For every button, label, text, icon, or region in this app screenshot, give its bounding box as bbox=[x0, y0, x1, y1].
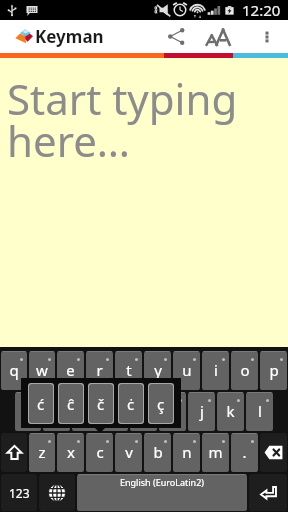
button[interactable]: More options bbox=[250, 20, 283, 53]
button[interactable]: d bbox=[72, 392, 99, 431]
button[interactable]: w bbox=[29, 351, 55, 390]
button[interactable]: h bbox=[159, 392, 186, 431]
button[interactable]: z bbox=[29, 433, 55, 472]
staticText: w bbox=[36, 360, 48, 380]
button[interactable]: 123 bbox=[1, 474, 37, 511]
staticText: d bbox=[81, 401, 91, 421]
staticText: g bbox=[139, 401, 149, 421]
staticText: n bbox=[182, 442, 192, 462]
staticText: x bbox=[67, 442, 75, 462]
button[interactable]: m bbox=[202, 433, 229, 472]
staticText: f bbox=[112, 401, 118, 421]
staticText: h bbox=[168, 401, 178, 421]
button[interactable]: ć bbox=[29, 384, 53, 423]
button[interactable]: y bbox=[144, 351, 171, 390]
staticText: t bbox=[126, 360, 132, 380]
button[interactable]: Share bbox=[160, 20, 193, 53]
staticText: ċ bbox=[127, 394, 135, 414]
staticText: ĉ bbox=[67, 394, 75, 414]
staticText: m bbox=[208, 442, 223, 462]
button[interactable]: Enter bbox=[249, 474, 287, 511]
staticText: Keyman bbox=[35, 25, 104, 48]
button[interactable]: k bbox=[217, 392, 244, 431]
button[interactable]: l bbox=[246, 392, 273, 431]
staticText: . bbox=[242, 442, 247, 462]
button[interactable]: a bbox=[15, 392, 41, 431]
button[interactable]: ç bbox=[149, 384, 173, 423]
button[interactable]: r bbox=[86, 351, 113, 390]
button[interactable]: v bbox=[115, 433, 142, 472]
staticText: s bbox=[53, 401, 61, 421]
button[interactable]: č bbox=[89, 384, 113, 423]
staticText: č bbox=[97, 394, 105, 414]
button[interactable]: b bbox=[144, 433, 171, 472]
staticText: r bbox=[96, 360, 103, 380]
staticText: 123 bbox=[9, 485, 30, 501]
button[interactable]: o bbox=[231, 351, 258, 390]
staticText: u bbox=[182, 360, 192, 380]
staticText: y bbox=[154, 360, 162, 380]
button[interactable]: . bbox=[231, 433, 258, 472]
staticText: l bbox=[258, 401, 262, 421]
staticText: q bbox=[9, 360, 19, 380]
staticText: v bbox=[125, 442, 133, 462]
staticText: b bbox=[153, 442, 163, 462]
button[interactable]: c bbox=[86, 433, 113, 472]
staticText: ç bbox=[157, 394, 165, 414]
button[interactable]: ċ bbox=[119, 384, 143, 423]
button[interactable]: u bbox=[173, 351, 200, 390]
button[interactable]: j bbox=[188, 392, 215, 431]
button[interactable]: f bbox=[101, 392, 128, 431]
button[interactable]: x bbox=[57, 433, 84, 472]
staticText: Start typing here… bbox=[7, 70, 238, 169]
button[interactable]: s bbox=[43, 392, 70, 431]
button[interactable]: ĉ bbox=[59, 384, 83, 423]
button[interactable]: q bbox=[1, 351, 27, 390]
button[interactable]: i bbox=[202, 351, 229, 390]
button[interactable]: English (EuroLatin2) bbox=[77, 474, 247, 511]
button[interactable]: Text size bbox=[201, 20, 234, 53]
button[interactable]: e bbox=[57, 351, 84, 390]
staticText: p bbox=[269, 360, 279, 380]
staticText: i bbox=[214, 360, 218, 380]
staticText: 12:20 bbox=[242, 0, 281, 20]
staticText: o bbox=[240, 360, 250, 380]
button[interactable]: t bbox=[115, 351, 142, 390]
button[interactable]: Change language bbox=[39, 474, 75, 511]
button[interactable]: Shift bbox=[1, 433, 27, 472]
staticText: ć bbox=[37, 394, 45, 414]
button[interactable]: g bbox=[130, 392, 157, 431]
staticText: k bbox=[226, 401, 235, 421]
staticText: j bbox=[200, 401, 204, 421]
button[interactable]: Backspace bbox=[260, 433, 287, 472]
staticText: a bbox=[24, 401, 33, 421]
staticText: English (EuroLatin2) bbox=[120, 476, 204, 488]
staticText: c bbox=[96, 442, 104, 462]
button[interactable]: p bbox=[260, 351, 287, 390]
button[interactable]: n bbox=[173, 433, 200, 472]
staticText: z bbox=[38, 442, 46, 462]
staticText: e bbox=[66, 360, 75, 380]
